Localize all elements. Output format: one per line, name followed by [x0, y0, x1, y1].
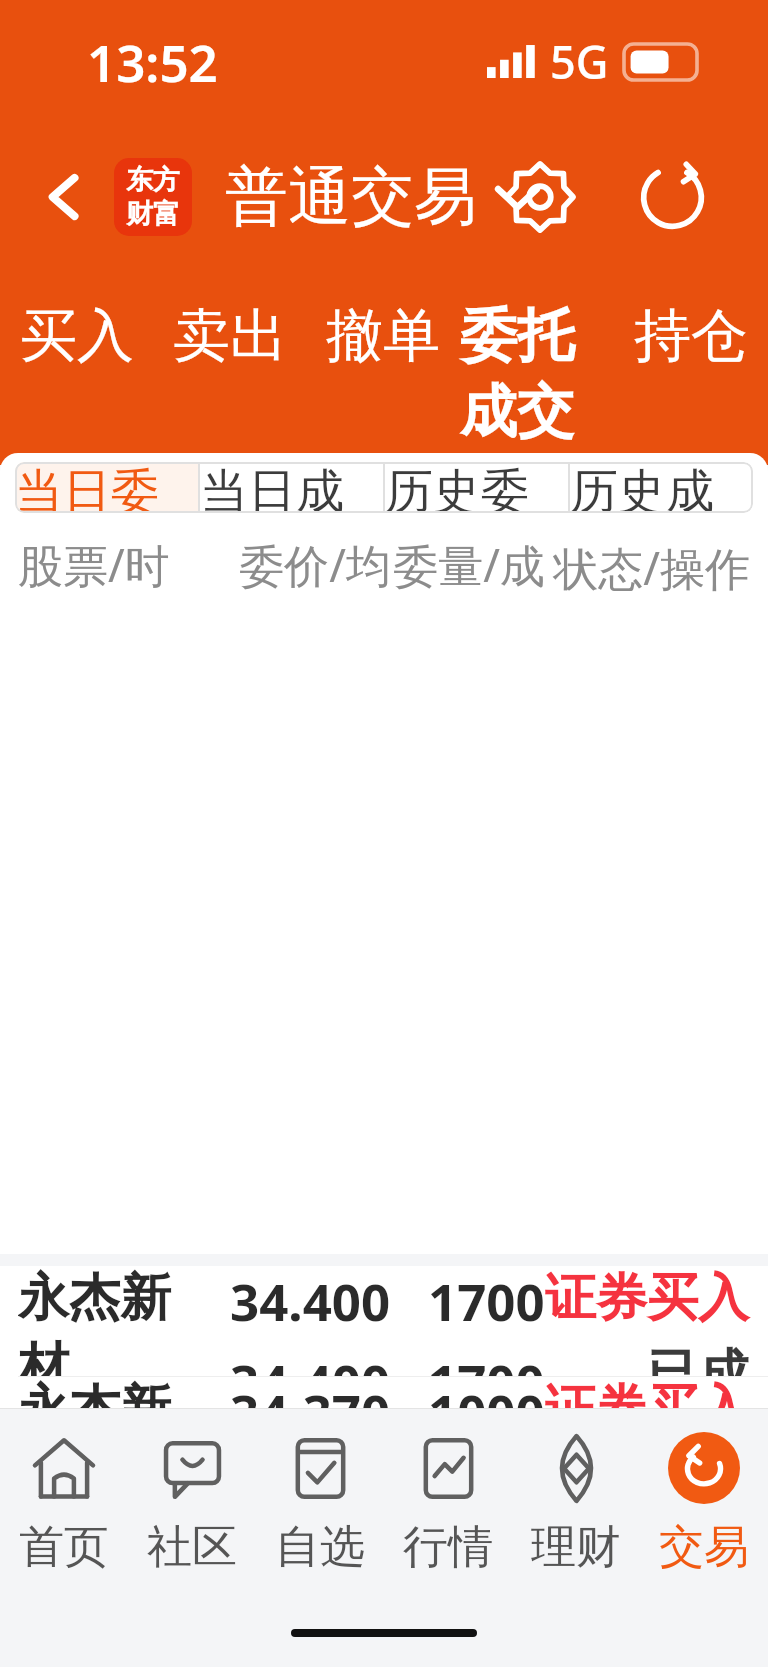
button[interactable]: 永杰新材 — [18, 1266, 750, 1376]
button[interactable]: 社区 — [128, 1409, 256, 1598]
staticText: 持仓 — [634, 300, 748, 372]
staticText: 自选 — [275, 1519, 365, 1576]
staticText: 永杰新材 — [18, 1377, 201, 1408]
staticText: 1700 — [428, 1347, 545, 1376]
staticText: 理财 — [531, 1519, 621, 1576]
staticText: 撤单 — [326, 300, 440, 372]
staticText: 34.400 — [230, 1266, 391, 1335]
button[interactable]: 东方财富 — [114, 158, 192, 236]
button[interactable]: 历史委托 — [385, 462, 568, 513]
button[interactable]: 首页 — [0, 1409, 128, 1598]
staticText: 买入 — [20, 300, 134, 372]
button[interactable]: 当日委托 — [15, 462, 198, 513]
staticText: 34.370 — [230, 1377, 391, 1408]
button[interactable]: 买入 — [0, 300, 153, 390]
button[interactable]: 永杰新材 — [18, 1377, 750, 1408]
staticText: 状态/操作 — [545, 537, 750, 598]
button[interactable]: 普通交易 — [225, 157, 543, 236]
button[interactable]: Settings — [480, 137, 600, 257]
staticText: 当日委托 — [15, 462, 198, 513]
staticText: 证券买入 — [545, 1266, 749, 1330]
staticText: 1700 — [428, 1266, 545, 1335]
staticText: 5G — [550, 31, 609, 92]
staticText: 历史委托 — [385, 462, 568, 513]
button[interactable]: Back — [18, 149, 114, 245]
staticText: 东方 — [126, 163, 180, 197]
staticText: 股票/时间 — [18, 534, 201, 600]
button[interactable]: Refresh — [612, 137, 732, 257]
staticText: 13:52 — [87, 27, 218, 96]
staticText: 委量/成交 — [391, 534, 545, 600]
staticText: 委托成交 — [460, 300, 614, 448]
staticText: 社区 — [147, 1519, 237, 1576]
button[interactable]: 持仓 — [614, 300, 768, 390]
staticText: 首页 — [19, 1519, 109, 1576]
button[interactable]: 历史成交 — [570, 462, 753, 513]
button[interactable]: 行情 — [384, 1409, 512, 1598]
staticText: 委价/均价 — [201, 534, 391, 600]
staticText: 普通交易 — [225, 157, 477, 236]
button[interactable]: 委托成交 — [460, 300, 614, 465]
button[interactable]: 撤单 — [306, 300, 460, 390]
staticText: 证券买入 — [545, 1377, 749, 1408]
staticText: 34.400 — [230, 1347, 391, 1376]
button[interactable]: 自选 — [256, 1409, 384, 1598]
button[interactable]: 理财 — [512, 1409, 640, 1598]
button[interactable]: 交易 — [640, 1409, 768, 1598]
staticText: 行情 — [403, 1519, 493, 1576]
staticText: 交易 — [659, 1519, 749, 1576]
staticText: 当日成交 — [200, 462, 383, 513]
staticText: 1000 — [428, 1377, 545, 1408]
button[interactable]: 卖出 — [153, 300, 306, 390]
staticText: 永杰新材 — [18, 1266, 201, 1376]
staticText: 财富 — [126, 197, 180, 231]
staticText: 已成 — [647, 1342, 749, 1376]
button[interactable]: 当日成交 — [200, 462, 383, 513]
staticText: 历史成交 — [570, 462, 753, 513]
staticText: 卖出 — [173, 300, 287, 372]
